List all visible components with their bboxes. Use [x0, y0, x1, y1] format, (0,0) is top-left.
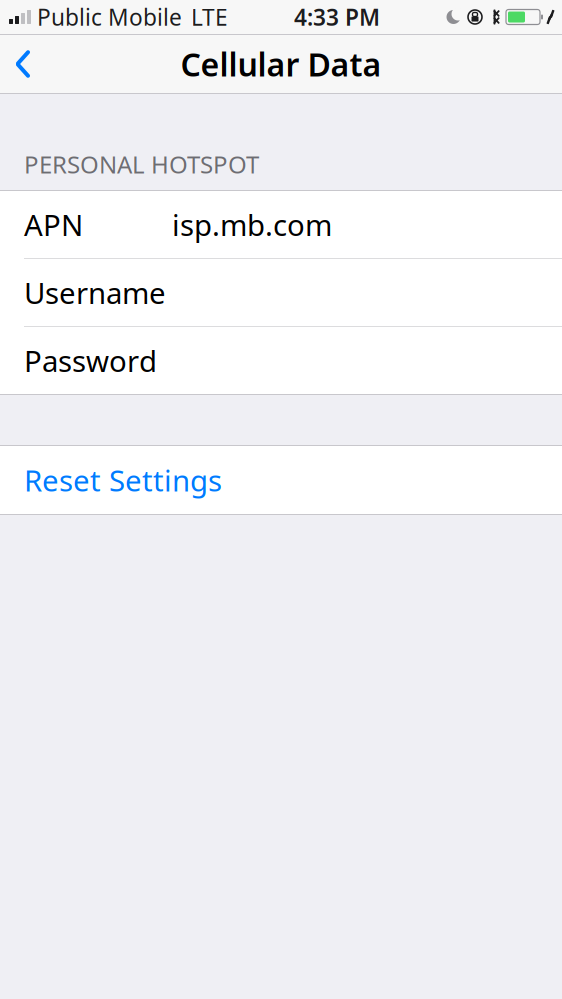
- button[interactable]: APN: [0, 191, 562, 258]
- staticText: LTE: [191, 2, 228, 32]
- staticText: APN: [24, 205, 83, 244]
- staticText: Reset Settings: [24, 460, 222, 499]
- button[interactable]: Password: [0, 327, 562, 394]
- staticText: 4:33 PM: [294, 2, 380, 32]
- staticText: isp.mb.com: [172, 205, 332, 244]
- staticText: Cellular Data: [180, 43, 381, 85]
- staticText: PERSONAL HOTSPOT: [24, 148, 259, 180]
- staticText: Public Mobile: [37, 2, 182, 32]
- button[interactable]: Username: [0, 259, 562, 326]
- staticText: Username: [24, 273, 166, 312]
- button[interactable]: Reset Settings: [0, 446, 562, 514]
- button[interactable]: Back: [0, 35, 51, 93]
- staticText: Password: [24, 341, 157, 380]
